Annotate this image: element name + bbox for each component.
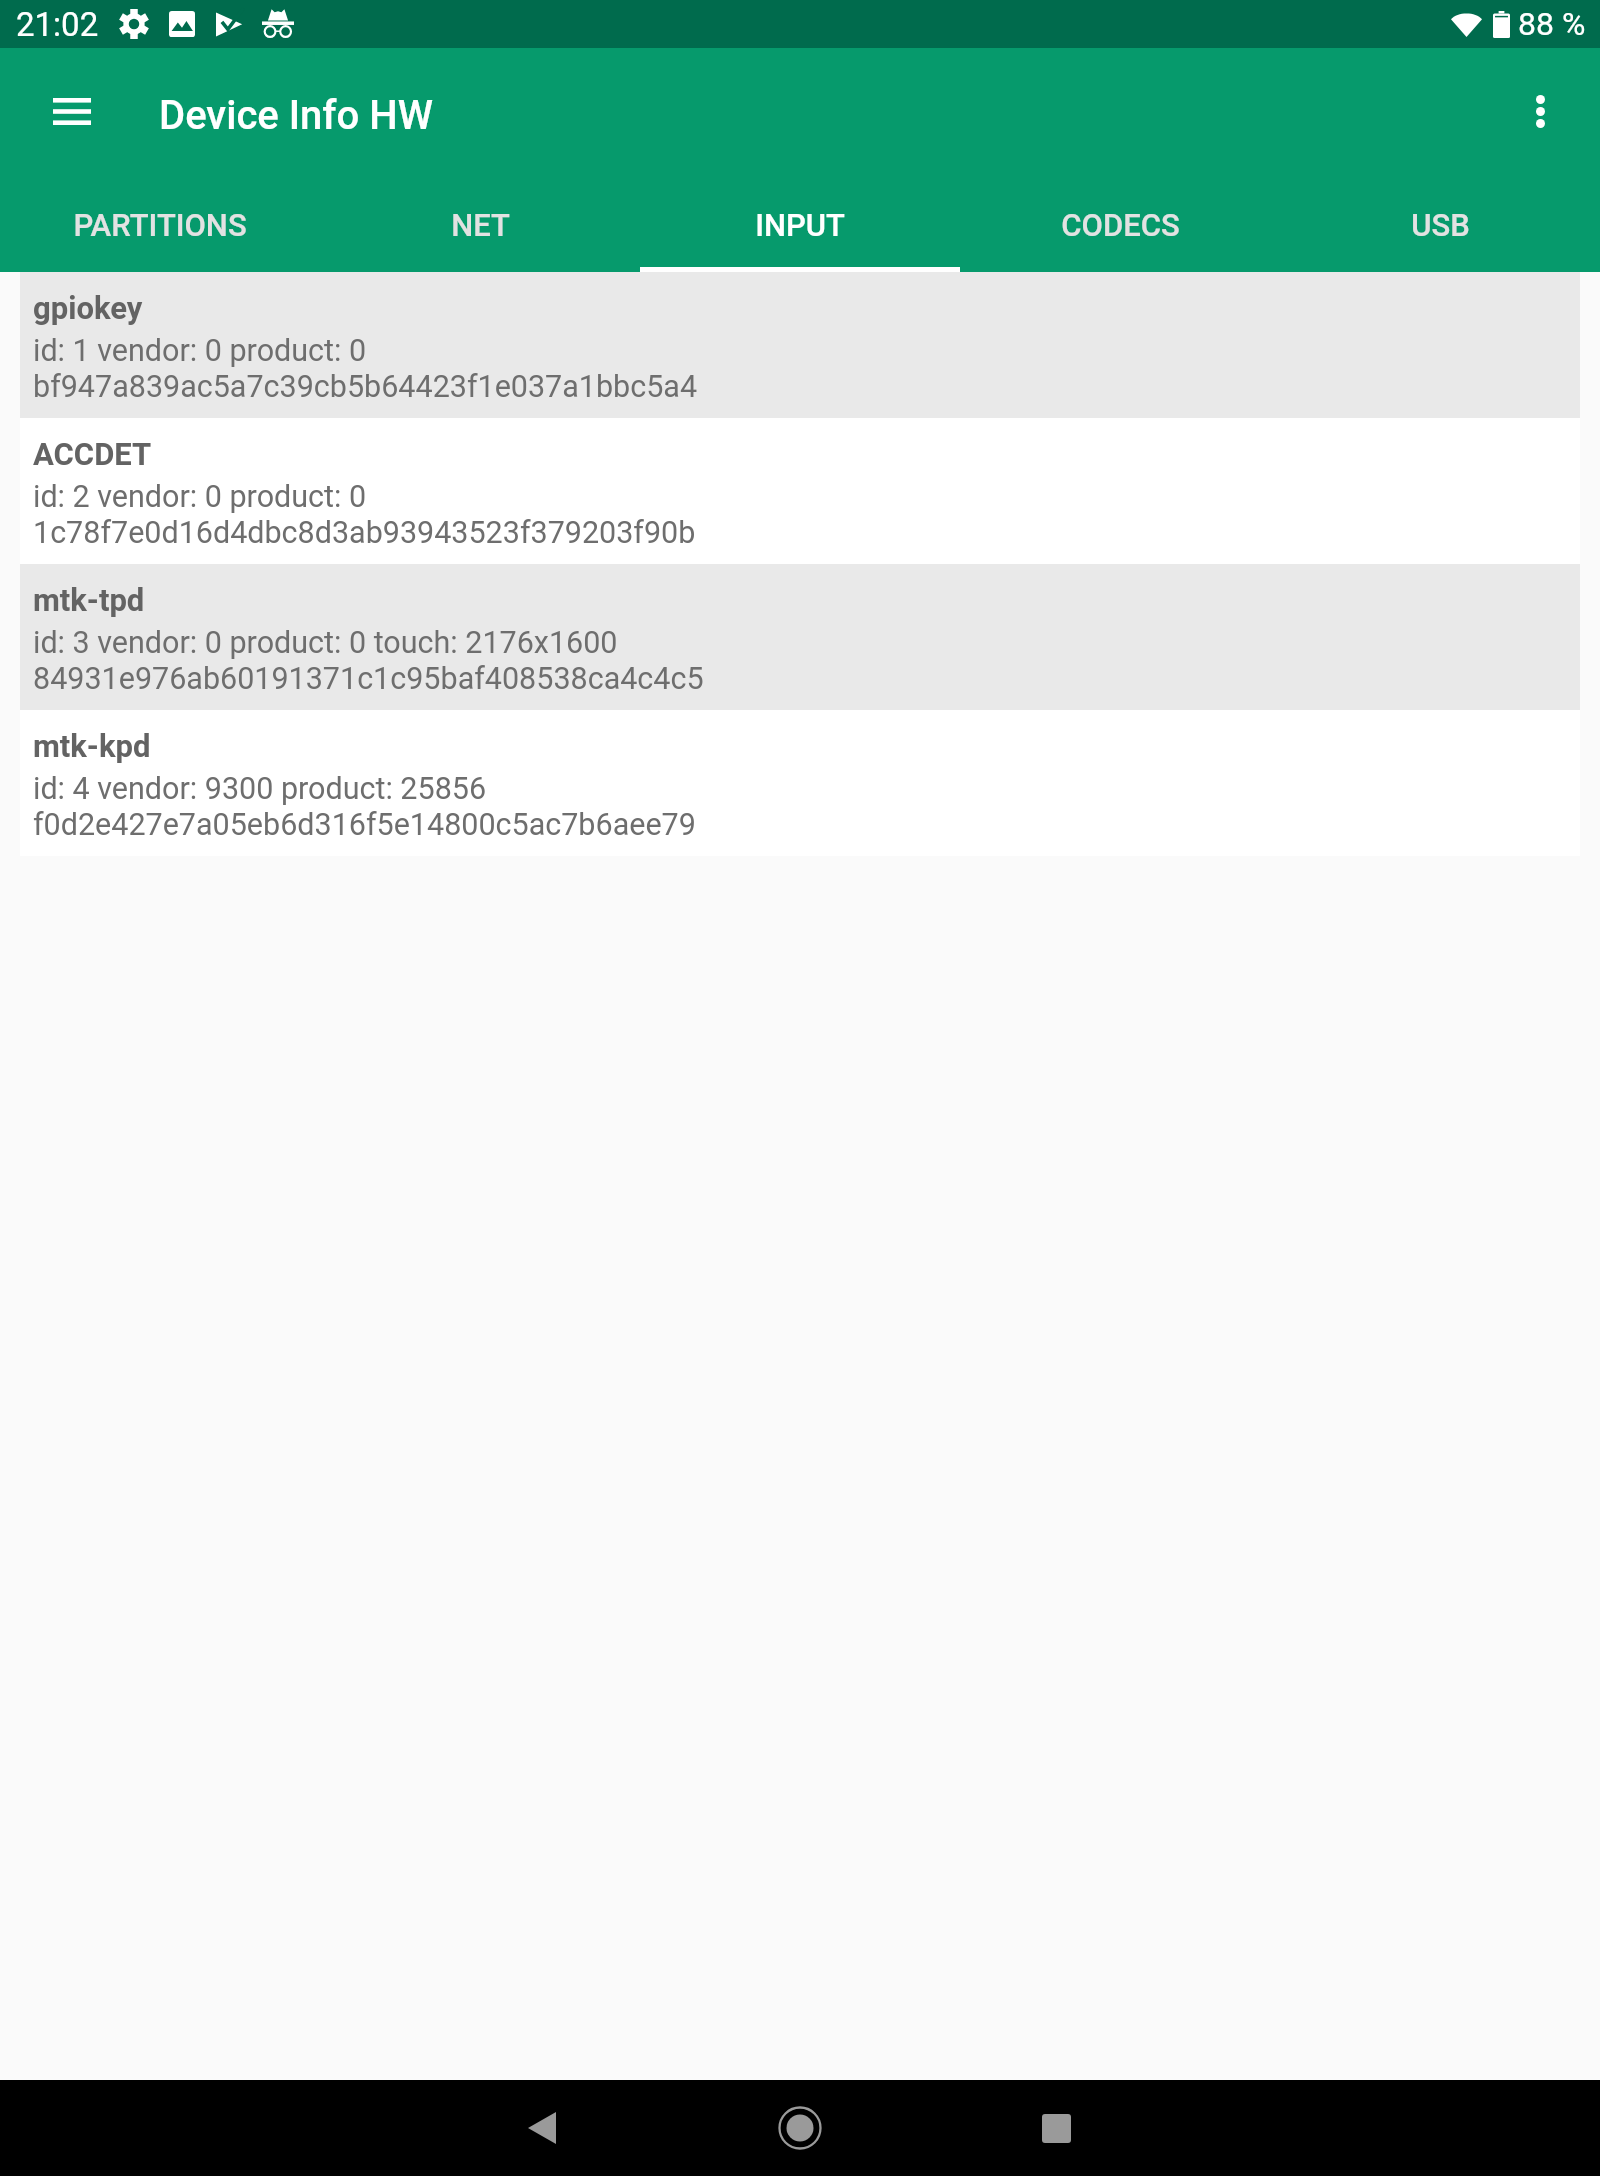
staticText: id: 2 vendor: 0 product: 0 <box>33 479 367 515</box>
button[interactable]: Home <box>752 2080 848 2176</box>
button[interactable]: USB <box>1280 174 1600 272</box>
staticText: INPUT <box>755 207 845 243</box>
staticText: 21:02 <box>16 5 99 44</box>
staticText: PARTITIONS <box>73 207 247 243</box>
button[interactable]: mtk-kpd <box>20 710 1580 856</box>
staticText: CODECS <box>1061 207 1180 243</box>
staticText: id: 4 vendor: 9300 product: 25856 <box>33 771 487 807</box>
staticText: USB <box>1411 207 1470 243</box>
staticText: mtk-tpd <box>33 582 145 618</box>
staticText: Device Info HW <box>159 92 433 139</box>
button[interactable]: PARTITIONS <box>0 174 320 272</box>
staticText: bf947a839ac5a7c39cb5b64423f1e037a1bbc5a4 <box>33 369 698 405</box>
button[interactable]: CODECS <box>960 174 1280 272</box>
staticText: ACCDET <box>33 436 152 472</box>
button[interactable]: Recent apps <box>1008 2080 1104 2176</box>
button[interactable]: mtk-tpd <box>20 564 1580 710</box>
staticText: id: 1 vendor: 0 product: 0 <box>33 333 367 369</box>
staticText: f0d2e427e7a05eb6d316f5e14800c5ac7b6aee79 <box>33 807 696 843</box>
button[interactable]: More options <box>1496 67 1584 155</box>
staticText: 84931e976ab60191371c1c95baf408538ca4c4c5 <box>33 661 704 697</box>
staticText: 1c78f7e0d16d4dbc8d3ab93943523f379203f90b <box>33 515 696 551</box>
button[interactable]: NET <box>320 174 640 272</box>
button[interactable]: INPUT <box>640 174 960 272</box>
button[interactable]: gpiokey <box>20 272 1580 418</box>
button[interactable]: Back <box>494 2080 590 2176</box>
staticText: mtk-kpd <box>33 728 151 764</box>
button[interactable]: ACCDET <box>20 418 1580 564</box>
staticText: id: 3 vendor: 0 product: 0 touch: 2176x1… <box>33 625 618 661</box>
staticText: 88 % <box>1518 5 1586 43</box>
staticText: NET <box>451 207 510 243</box>
staticText: gpiokey <box>33 290 143 326</box>
button[interactable]: Open navigation menu <box>28 67 116 155</box>
